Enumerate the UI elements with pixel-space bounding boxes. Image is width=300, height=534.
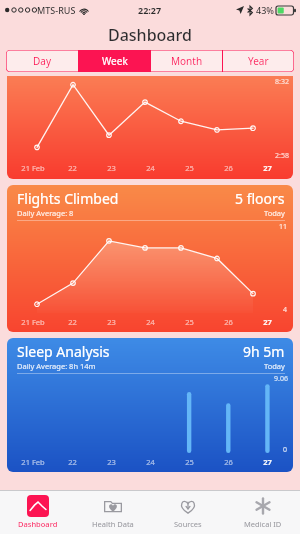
staticText: Week <box>102 54 128 68</box>
staticText: 0 <box>283 445 288 455</box>
staticText: 22 <box>68 163 77 173</box>
staticText: 21 Feb <box>21 457 45 467</box>
staticText: Flights Climbed <box>17 189 119 208</box>
button[interactable]: Day <box>6 50 78 72</box>
staticText: 25 <box>185 317 194 327</box>
staticText: Medical ID <box>244 519 282 529</box>
staticText: 11 <box>279 222 288 232</box>
staticText: 26 <box>224 317 233 327</box>
staticText: 26 <box>224 163 233 173</box>
staticText: Sources <box>174 519 202 529</box>
staticText: 43% <box>256 4 274 16</box>
staticText: 4 <box>283 305 288 315</box>
staticText: 27 <box>263 317 272 327</box>
staticText: Daily Average: 8h 14m <box>17 361 96 371</box>
staticText: Dashboard <box>18 519 58 529</box>
button[interactable]: Year <box>223 50 294 72</box>
staticText: Today <box>264 208 285 218</box>
staticText: 22:27 <box>138 4 162 16</box>
button[interactable]: Sources <box>150 491 225 534</box>
staticText: 27 <box>263 457 272 467</box>
staticText: 21 Feb <box>21 317 45 327</box>
button[interactable]: Dashboard <box>0 491 75 534</box>
staticText: 23 <box>107 457 116 467</box>
staticText: 22 <box>68 457 77 467</box>
staticText: 24 <box>146 457 155 467</box>
staticText: 23 <box>107 163 116 173</box>
staticText: 5 floors <box>235 189 285 208</box>
button[interactable]: Week <box>79 50 150 72</box>
staticText: 23 <box>107 317 116 327</box>
staticText: 25 <box>185 457 194 467</box>
staticText: 27 <box>263 163 272 173</box>
staticText: Today <box>264 361 285 371</box>
staticText: Day <box>33 54 52 68</box>
staticText: 9h 5m <box>243 342 285 361</box>
staticText: 8:32 <box>275 77 289 87</box>
staticText: 9.06 <box>274 374 288 384</box>
button[interactable]: 8:32 <box>7 76 293 179</box>
staticText: 25 <box>185 163 194 173</box>
button[interactable]: Medical ID <box>225 491 300 534</box>
staticText: 24 <box>146 163 155 173</box>
button[interactable]: Month <box>151 50 222 72</box>
staticText: 2:58 <box>275 151 289 161</box>
staticText: Dashboard <box>108 24 192 46</box>
staticText: 26 <box>224 457 233 467</box>
staticText: MTS-RUS <box>37 4 76 16</box>
button[interactable]: Flights Climbed <box>7 185 293 332</box>
button[interactable]: Health Data <box>75 491 150 534</box>
staticText: 24 <box>146 317 155 327</box>
button[interactable]: Sleep Analysis <box>7 338 293 472</box>
staticText: Sleep Analysis <box>17 342 110 361</box>
staticText: Year <box>248 54 269 68</box>
staticText: 21 Feb <box>21 163 45 173</box>
staticText: Daily Average: 8 <box>17 208 74 218</box>
staticText: 22 <box>68 317 77 327</box>
staticText: Health Data <box>92 519 134 529</box>
staticText: Month <box>171 54 203 68</box>
